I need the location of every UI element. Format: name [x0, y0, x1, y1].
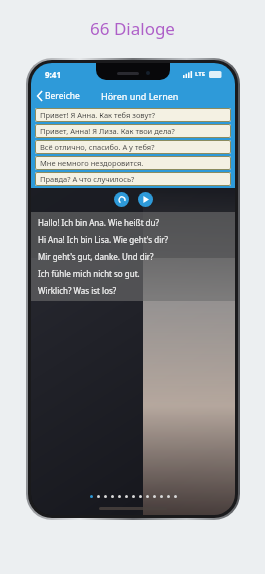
button[interactable]: Привет! Я Анна. Как тебя зовут?	[35, 108, 231, 122]
staticText: Ich fühle mich nicht so gut.	[38, 268, 140, 279]
button[interactable]: Repeat	[114, 192, 129, 207]
staticText: 9:41	[45, 69, 61, 80]
staticText: Привет! Я Анна. Как тебя зовут?	[40, 110, 156, 120]
button[interactable]: Bereiche	[31, 87, 86, 105]
staticText: Hallo! Ich bin Ana. Wie heißt du?	[38, 217, 159, 228]
staticText: Mir geht's gut, danke. Und dir?	[38, 251, 154, 262]
button[interactable]: Привет, Анна! Я Лиза. Как твои дела?	[35, 124, 231, 138]
staticText: Привет, Анна! Я Лиза. Как твои дела?	[40, 126, 175, 136]
staticText: Wirklich? Was ist los?	[38, 285, 117, 296]
button[interactable]: Правда? А что случилось?	[35, 172, 231, 186]
staticText: 66 Dialoge	[90, 17, 175, 40]
button[interactable]: Всё отлично, спасибо. А у тебя?	[35, 140, 231, 154]
staticText: Hören und Lernen	[101, 90, 179, 102]
staticText: Правда? А что случилось?	[40, 174, 135, 184]
staticText: Мне немного нездоровится.	[40, 158, 144, 168]
button[interactable]: Мне немного нездоровится.	[35, 156, 231, 170]
staticText: Всё отлично, спасибо. А у тебя?	[40, 142, 155, 152]
button[interactable]: Play	[138, 192, 153, 207]
staticText: Hi Ana! Ich bin Lisa. Wie geht's dir?	[38, 234, 168, 245]
staticText: LTE	[195, 70, 206, 78]
staticText: Bereiche	[45, 90, 80, 102]
